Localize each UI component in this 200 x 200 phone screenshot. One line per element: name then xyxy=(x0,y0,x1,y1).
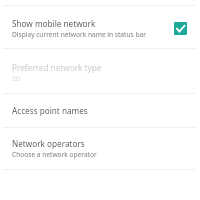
button[interactable]: Network operators xyxy=(0,128,200,169)
staticText: Access point names xyxy=(12,105,88,116)
staticText: Display current network name in status b… xyxy=(12,30,146,39)
button[interactable]: Preferred network type xyxy=(0,49,200,93)
staticText: Choose a network operator xyxy=(12,150,97,159)
staticText: Show mobile network xyxy=(12,18,96,29)
button[interactable]: Access point names xyxy=(0,94,200,127)
staticText: Network operators xyxy=(12,138,85,149)
staticText: Preferred network type xyxy=(12,62,102,73)
staticText: 2G xyxy=(12,74,21,83)
button[interactable]: Show mobile network xyxy=(0,6,200,48)
other: Show mobile network checkbox, checked xyxy=(174,22,187,35)
